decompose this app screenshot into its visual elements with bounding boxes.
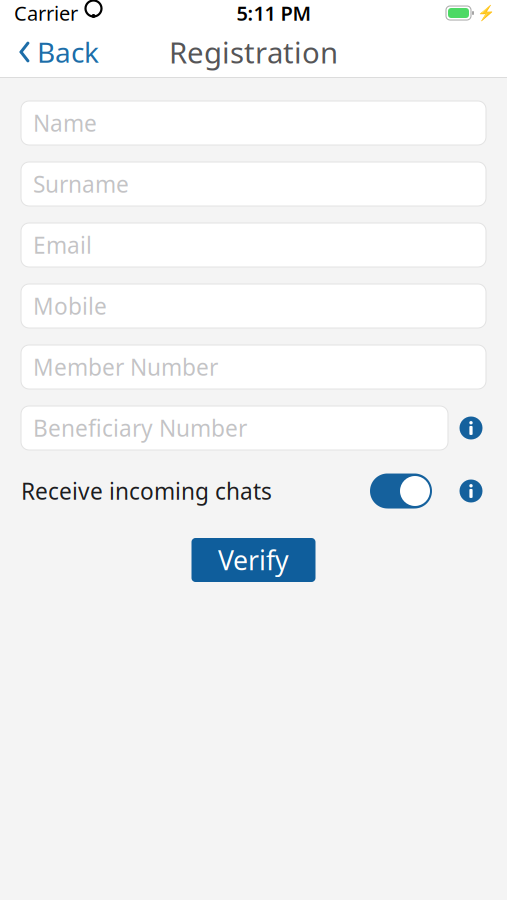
staticText: Carrier bbox=[14, 0, 78, 26]
staticText: Surname bbox=[33, 169, 129, 199]
button[interactable]: More information bbox=[456, 413, 486, 443]
button[interactable]: More information bbox=[456, 476, 486, 506]
button[interactable]: Verify bbox=[191, 538, 315, 582]
staticText: Name bbox=[33, 108, 97, 138]
button[interactable]: Back bbox=[0, 30, 109, 74]
staticText: 5:11 PM bbox=[236, 0, 311, 26]
staticText: Mobile bbox=[33, 291, 107, 321]
button[interactable]: Receive incoming chats toggle bbox=[370, 473, 432, 508]
staticText: Member Number bbox=[33, 352, 218, 382]
staticText: Beneficiary Number bbox=[33, 413, 247, 443]
staticText: Back bbox=[37, 33, 99, 71]
staticText: Registration bbox=[169, 32, 338, 71]
staticText: Email bbox=[33, 230, 92, 260]
staticText: Verify bbox=[218, 542, 289, 578]
staticText: ⚡ bbox=[477, 5, 495, 21]
staticText: Receive incoming chats bbox=[21, 476, 272, 506]
